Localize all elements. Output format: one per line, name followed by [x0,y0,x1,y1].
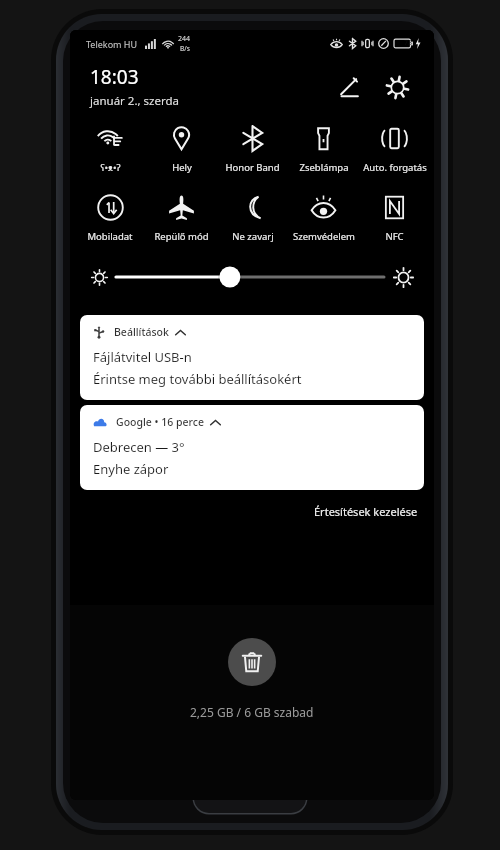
button[interactable]: Zseblámpa [288,123,359,176]
button[interactable]: Google • 16 perce [80,405,424,490]
button[interactable]: Alacsony fényerő [82,260,116,294]
staticText: Fájlátvitel USB-n [93,348,192,366]
button[interactable]: Ne zavarj [217,192,288,245]
button[interactable]: Magas fényerő [384,258,422,296]
staticText: Jogosultságok, Alapértelmezett alkalmazá… [170,202,319,212]
staticText: Akkumulátor [170,226,228,239]
staticText: 73 [404,38,413,48]
staticText: B/s [180,44,190,53]
button[interactable]: Szerkesztés [330,68,368,106]
staticText: Beállítások [114,325,169,339]
button[interactable]: Beállítások [378,68,416,106]
button[interactable]: Hely [146,123,217,176]
button[interactable]: NFC [359,192,430,245]
staticText: Repülő mód [154,230,209,243]
staticText: Honor Band [225,161,280,174]
button[interactable]: Honor Band [217,123,288,176]
button[interactable]: Mobiladat [74,192,146,245]
button[interactable]: Tisztítás [228,638,276,686]
staticText: Google • 16 perce [116,415,204,429]
staticText: Auto. forgatás [363,161,427,174]
staticText: Zseblámpa [299,161,349,174]
staticText: ʕ•ᴥ•ʔ [100,161,121,174]
staticText: 244 [178,34,191,44]
button[interactable]: Szemvédelem [288,192,359,245]
button[interactable]: Repülő mód [146,192,217,245]
staticText: Mobiladat [87,230,133,243]
staticText: Tárhely [170,265,203,278]
staticText: 2,25 GB / 6 GB szabad [190,704,314,720]
staticText: NFC [385,230,404,243]
button[interactable]: Fényerő csúszka [116,262,384,292]
staticText: Érintse meg további beállításokért [93,370,302,388]
button[interactable] [76,245,144,555]
staticText: Ne zavarj [232,230,274,243]
staticText: Enyhe zápor [93,460,169,478]
button[interactable] [150,170,434,555]
button[interactable]: Beállítások [80,315,424,400]
staticText: Hely [172,161,192,174]
staticText: 18:03 [90,64,139,90]
staticText: Energiatakarékos mód, Akkumulátor haszná… [170,241,324,251]
staticText: Debrecen — 3° [93,438,185,456]
staticText: Telekom HU [86,38,138,50]
button[interactable]: ʕ•ᴥ•ʔ [74,123,146,176]
staticText: január 2., szerda [90,93,179,109]
button[interactable]: Auto. forgatás [359,123,430,176]
staticText: Alkalmazások [170,187,231,200]
button[interactable]: Értesítések kezelése [308,500,424,523]
staticText: Értesítések kezelése [314,504,418,519]
staticText: Szemvédelem [293,230,355,243]
